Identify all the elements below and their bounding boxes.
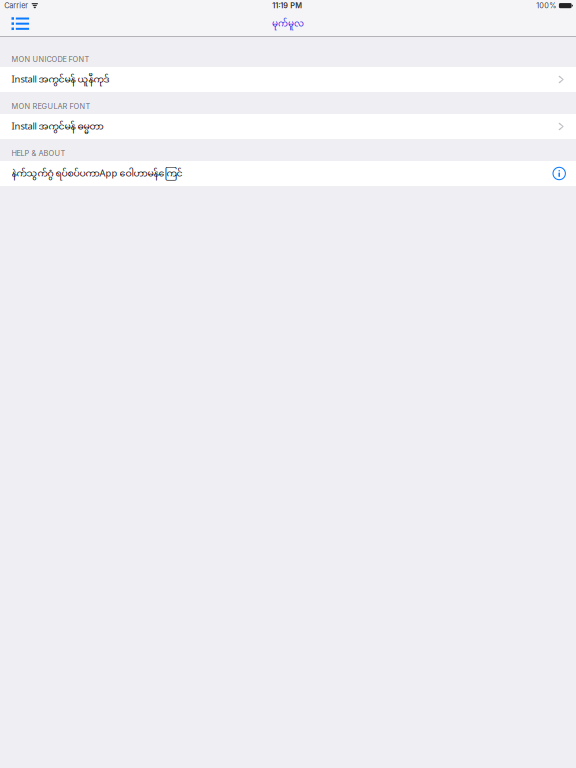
staticText: နဲက်သွက်ဂွံ ရပ်စပ်ပကာApp ဝေါဟာမန်ကြေၚ် [11,164,182,185]
button[interactable]: Install အကွၚ်မန် ဓမ္မတာ [0,114,576,139]
staticText: Carrier [4,1,28,10]
staticText: မုက်မူလ [272,15,304,34]
staticText: Install အကွၚ်မန် ဓမ္မတာ [11,117,103,138]
staticText: 11:19 PM [272,1,302,10]
button[interactable]: Install အကွၚ်မန် ယူနီကုဒ် [0,67,576,92]
button[interactable]: နဲက်သွက်ဂွံ ရပ်စပ်ပကာApp ဝေါဟာမန်ကြေၚ် [0,161,576,186]
staticText: 100% [536,1,556,10]
staticText: MON UNICODE FONT [11,55,89,64]
button[interactable]: Show font list [0,11,37,36]
staticText: Install အကွၚ်မန် ယူနီကုဒ် [11,70,109,91]
staticText: MON REGULAR FONT [11,102,90,111]
staticText: HELP & ABOUT [11,149,65,158]
